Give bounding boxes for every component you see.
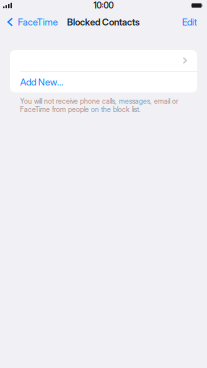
staticText: You will not receive phone calls, messag…	[20, 97, 178, 114]
staticText: Edit	[182, 16, 197, 28]
button[interactable]: FaceTime	[0, 13, 64, 31]
staticText: Add New…	[20, 76, 63, 88]
button[interactable]: Edit	[174, 13, 207, 31]
staticText: 10:00	[93, 0, 113, 10]
staticText: FaceTime	[18, 16, 58, 28]
button[interactable]: Add New…	[10, 71, 197, 92]
staticText: Blocked Contacts	[67, 16, 140, 28]
